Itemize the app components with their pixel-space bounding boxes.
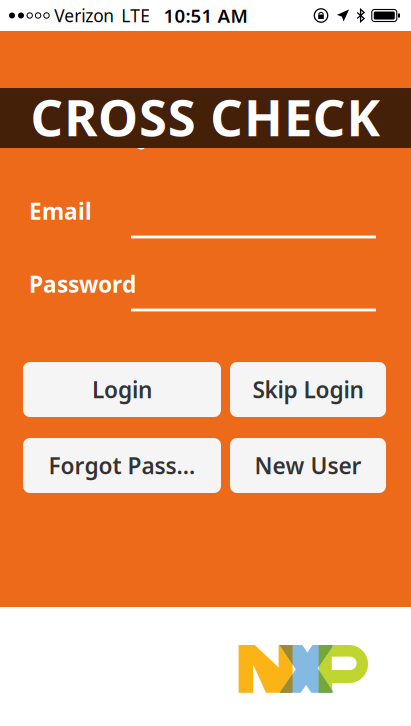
staticText: LTE xyxy=(121,4,150,27)
button[interactable]: Login xyxy=(23,362,221,417)
button[interactable]: Skip Login xyxy=(230,362,386,417)
staticText: Skip Login xyxy=(252,374,363,404)
staticText: CROSS CHECK xyxy=(30,83,380,150)
staticText: Forgot Pass… xyxy=(48,450,195,480)
staticText: Verizon xyxy=(54,4,114,27)
staticText: Password xyxy=(29,269,136,299)
staticText: Login xyxy=(92,374,152,404)
button[interactable]: New User xyxy=(230,438,386,493)
button[interactable]: Forgot Pass… xyxy=(23,438,221,493)
staticText: New User xyxy=(254,450,361,480)
staticText: 10:51 AM xyxy=(163,3,247,28)
staticText: Email xyxy=(29,196,92,226)
